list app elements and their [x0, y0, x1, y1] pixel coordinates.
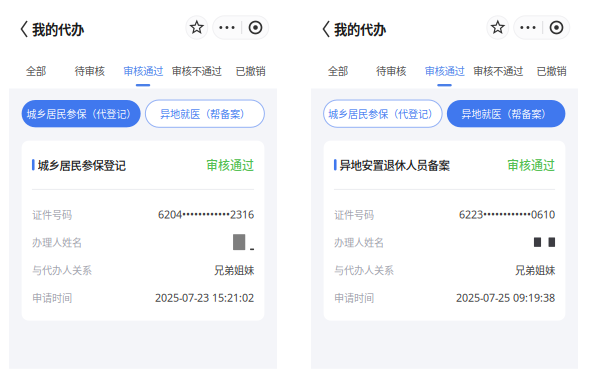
staticText: 与代办人关系 [32, 262, 92, 277]
staticText: 异地就医（帮备案） [461, 106, 551, 121]
staticText: 6223••••••••••••0610 [459, 207, 555, 222]
button[interactable]: 城乡居民参保（代登记） [22, 100, 141, 127]
staticText: 审核通过 [507, 156, 555, 173]
button[interactable]: 待审核 [364, 48, 418, 88]
staticText: 审核通过 [206, 156, 254, 173]
button[interactable]: 已撤销 [525, 48, 578, 88]
button[interactable]: 审核通过 [116, 48, 170, 88]
button[interactable]: 审核不通过 [170, 48, 223, 88]
staticText: 城乡居民参保登记 [37, 156, 125, 173]
button[interactable]: 待审核 [63, 48, 116, 88]
button[interactable]: More options [514, 17, 570, 41]
staticText: 审核不通过 [172, 63, 222, 78]
staticText: 证件号码 [334, 207, 374, 222]
staticText: 待审核 [74, 63, 104, 78]
staticText: 审核通过 [424, 63, 464, 78]
staticText: 异地就医（帮备案） [160, 106, 250, 121]
staticText: 城乡居民参保（代登记） [26, 106, 136, 121]
staticText: 城乡居民参保（代登记） [328, 106, 438, 121]
staticText: 办理人姓名 [334, 235, 384, 249]
staticText: 证件号码 [32, 207, 72, 222]
button[interactable]: Favorite [487, 17, 509, 41]
button[interactable]: 审核通过 [418, 48, 471, 88]
staticText: 我的代办 [32, 19, 84, 38]
staticText: 申请时间 [334, 290, 374, 305]
button[interactable]: 全部 [9, 48, 63, 88]
staticText: 全部 [328, 63, 348, 78]
button[interactable]: More options [213, 17, 269, 41]
staticText: 与代办人关系 [334, 262, 394, 277]
button[interactable]: 异地就医（帮备案） [145, 100, 264, 127]
staticText: 2025-07-25 09:19:38 [456, 290, 555, 305]
button[interactable]: Favorite [186, 17, 208, 41]
button[interactable]: 已撤销 [223, 48, 277, 88]
staticText: 申请时间 [32, 290, 72, 305]
staticText: 全部 [26, 63, 46, 78]
staticText: 审核不通过 [473, 63, 523, 78]
staticText: 异地安置退休人员备案 [340, 156, 450, 173]
button[interactable]: 城乡居民参保（代登记） [324, 100, 442, 127]
button[interactable]: 全部 [311, 48, 364, 88]
button[interactable]: 我的代办 [311, 14, 394, 44]
staticText: 已撤销 [235, 63, 265, 78]
button[interactable]: 审核不通过 [471, 48, 525, 88]
staticText: 待审核 [376, 63, 406, 78]
staticText: 6204••••••••••••2316 [158, 207, 254, 222]
staticText: 兄弟姐妹 [214, 262, 254, 277]
button[interactable]: 我的代办 [9, 14, 92, 44]
staticText: 我的代办 [334, 19, 386, 38]
button[interactable]: 异地就医（帮备案） [447, 100, 565, 127]
staticText: 办理人姓名 [32, 235, 82, 249]
staticText: 已撤销 [536, 63, 566, 78]
staticText: 兄弟姐妹 [515, 262, 555, 277]
staticText: 审核通过 [123, 63, 163, 78]
staticText: 2025-07-23 15:21:02 [155, 290, 254, 305]
